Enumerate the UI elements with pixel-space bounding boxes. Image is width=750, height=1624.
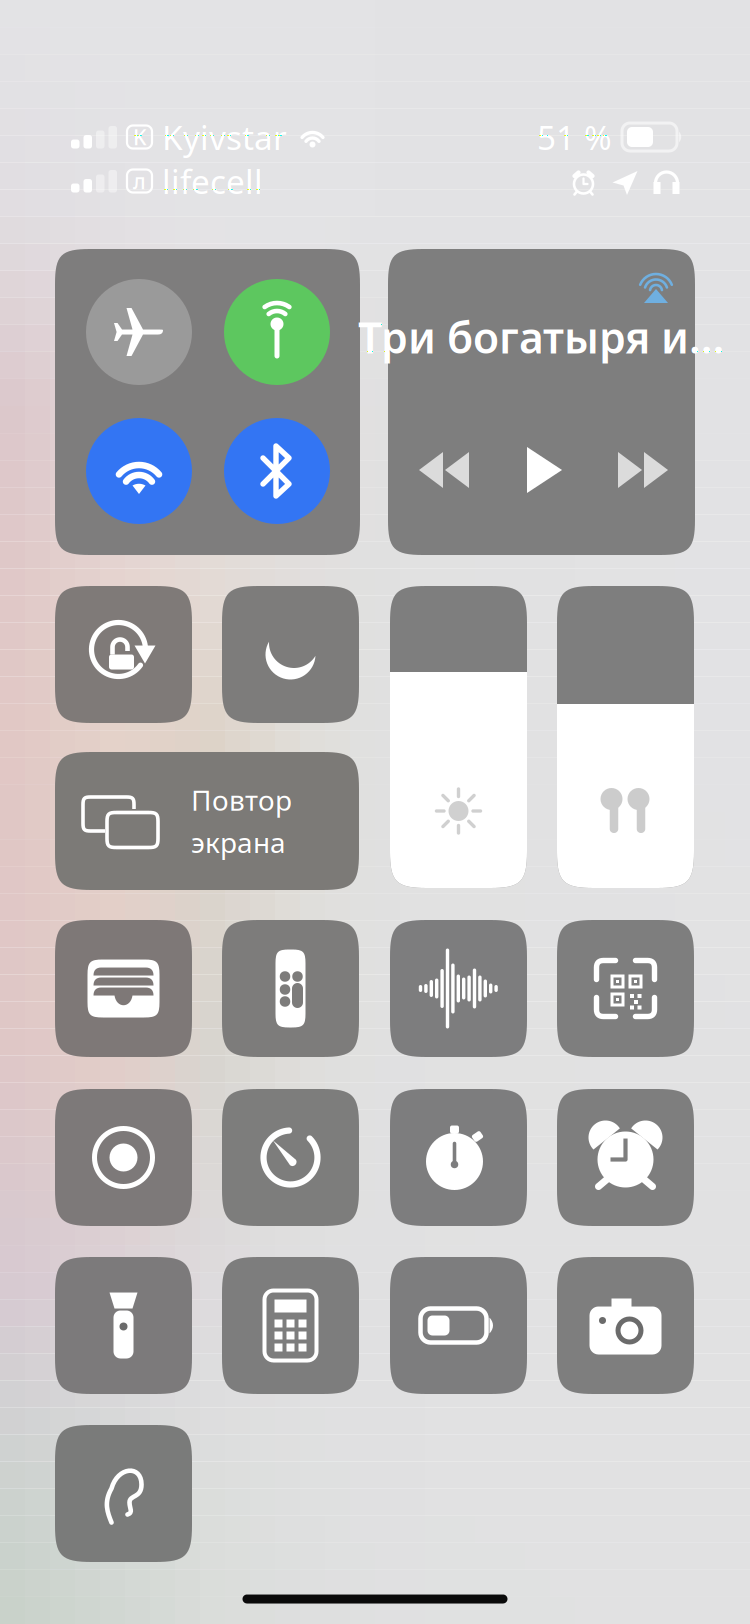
button[interactable]: Calculator <box>222 1257 359 1394</box>
button[interactable]: Screen Recording <box>55 1089 192 1226</box>
staticText: 51 % <box>537 115 612 159</box>
button[interactable]: Screen Mirroring <box>55 752 359 890</box>
button[interactable]: Stopwatch <box>390 1089 527 1226</box>
staticText: Kyivstar <box>162 115 287 159</box>
staticText: lifecell <box>162 159 263 203</box>
button[interactable]: Alarm <box>557 1089 694 1226</box>
button[interactable]: Hearing <box>55 1425 192 1562</box>
button[interactable]: Low Power Mode <box>390 1257 527 1394</box>
button[interactable]: Now Playing <box>388 249 695 555</box>
button[interactable]: Camera <box>557 1257 694 1394</box>
button[interactable]: Brightness <box>390 586 527 888</box>
button[interactable]: Rotation Lock <box>55 586 192 723</box>
staticText: Повтор <box>191 781 292 818</box>
button[interactable]: Timer <box>222 1089 359 1226</box>
button[interactable]: Connectivity <box>55 249 360 555</box>
button[interactable]: Wallet <box>55 920 192 1057</box>
button[interactable]: Remote <box>222 920 359 1057</box>
staticText: Три богатыря и… <box>358 309 724 365</box>
button[interactable]: Volume <box>557 586 694 888</box>
staticText: л <box>133 167 146 195</box>
button[interactable]: Code Scanner <box>557 920 694 1057</box>
button[interactable]: Do Not Disturb <box>222 586 359 723</box>
staticText: K <box>133 123 146 151</box>
button[interactable]: Flashlight <box>55 1257 192 1394</box>
staticText: экрана <box>191 823 286 861</box>
button[interactable]: Sound Recognition <box>390 920 527 1057</box>
